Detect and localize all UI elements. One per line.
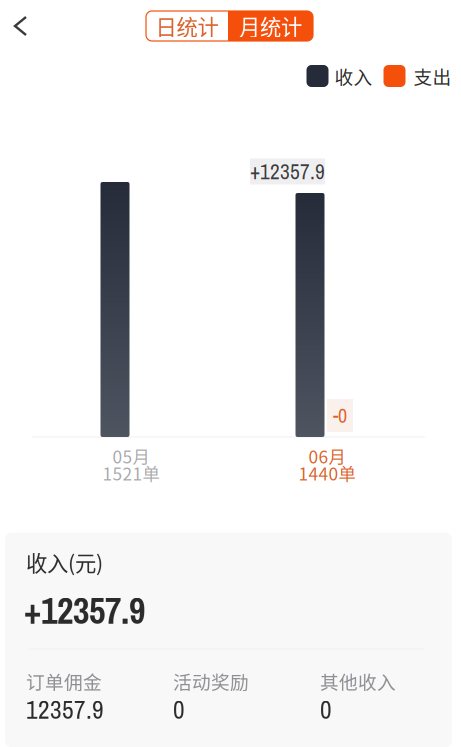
staticText: 0: [173, 692, 185, 727]
staticText: 05月: [112, 443, 149, 469]
staticText: +12357.9: [250, 157, 325, 186]
staticText: 支出: [413, 62, 451, 89]
staticText: 月统计: [239, 11, 302, 41]
button[interactable]: 月统计: [228, 11, 313, 41]
staticText: 活动奖励: [173, 667, 249, 694]
staticText: 06月: [308, 443, 345, 469]
staticText: 收入: [334, 62, 372, 89]
staticText: 订单佣金: [26, 667, 102, 694]
staticText: -0: [333, 402, 347, 429]
staticText: 1521单: [102, 460, 159, 486]
staticText: 12357.9: [26, 692, 104, 727]
button[interactable]: Back: [2, 4, 39, 48]
staticText: 0: [320, 692, 332, 727]
staticText: +12357.9: [24, 586, 145, 635]
button[interactable]: 日统计: [146, 11, 228, 41]
staticText: 其他收入: [320, 667, 396, 694]
staticText: 日统计: [155, 11, 218, 41]
staticText: 1440单: [298, 460, 355, 486]
staticText: 收入(元): [26, 546, 103, 577]
